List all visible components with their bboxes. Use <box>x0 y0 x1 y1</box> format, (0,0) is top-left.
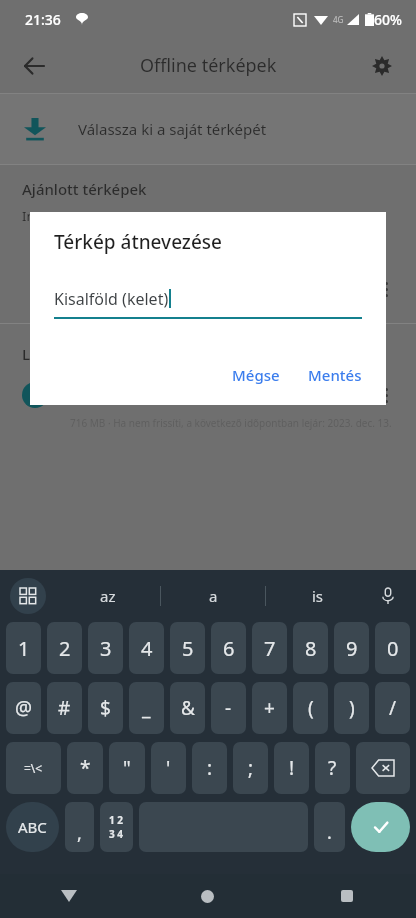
button[interactable]: az <box>56 570 160 622</box>
staticText: Térkép átnevezése <box>54 229 222 255</box>
staticText: * <box>80 755 91 781</box>
button[interactable]: Back <box>12 44 56 88</box>
button[interactable]: ( <box>293 682 328 734</box>
button[interactable]: 7 <box>252 622 287 674</box>
button[interactable]: Recents <box>277 874 416 918</box>
button[interactable]: ! <box>274 742 309 794</box>
staticText: Kisalföld (kelet) <box>54 288 169 310</box>
staticText: Mégse <box>232 365 280 385</box>
button[interactable]: 1 <box>6 622 41 674</box>
button[interactable]: Válassza ki a saját térképét <box>0 94 416 164</box>
staticText: 4 <box>141 635 153 662</box>
button[interactable]: , <box>65 802 94 852</box>
staticText: 9 <box>346 635 358 662</box>
button[interactable]: Numbers <box>100 802 133 852</box>
button[interactable]: Enter <box>351 802 410 852</box>
button[interactable]: a <box>161 570 265 622</box>
button[interactable]: & <box>170 682 205 734</box>
button[interactable]: $ <box>88 682 123 734</box>
button[interactable]: Mégse <box>224 357 288 393</box>
staticText: " <box>123 755 131 781</box>
staticText: / <box>389 695 397 721</box>
staticText: Válassza ki a saját térképét <box>78 119 267 139</box>
staticText: 21:36 <box>25 10 61 29</box>
button[interactable]: 5 <box>170 622 205 674</box>
staticText: 3 <box>100 635 112 662</box>
staticText: - <box>225 695 232 721</box>
button[interactable]: ? <box>315 742 350 794</box>
staticText: Le <box>22 344 39 364</box>
staticText: 4G <box>333 14 344 25</box>
button[interactable]: @ <box>6 682 41 734</box>
button[interactable]: 0 <box>375 622 410 674</box>
staticText: & <box>181 695 195 721</box>
staticText: is <box>312 586 324 606</box>
button[interactable]: More options <box>374 383 398 407</box>
staticText: 8 <box>305 635 317 662</box>
button[interactable]: 6 <box>211 622 246 674</box>
button[interactable]: / <box>375 682 410 734</box>
staticText: ( <box>308 695 314 721</box>
staticText: 1 <box>18 635 30 662</box>
staticText: ) <box>349 695 355 721</box>
button[interactable]: Settings <box>360 44 404 88</box>
staticText: ABC <box>18 817 47 837</box>
button[interactable]: : <box>192 742 227 794</box>
button[interactable]: 9 <box>334 622 369 674</box>
button[interactable]: * <box>67 742 103 794</box>
button[interactable]: - <box>211 682 246 734</box>
staticText: # <box>58 695 71 721</box>
staticText: 7 <box>264 635 276 662</box>
staticText: @ <box>15 695 33 721</box>
staticText: 0 <box>387 635 399 662</box>
staticText: In <box>22 207 35 225</box>
button[interactable]: ABC <box>6 802 59 852</box>
staticText: 716 MB · Ha nem frissíti, a következő id… <box>70 416 392 430</box>
staticText: . <box>327 820 332 845</box>
staticText: 3 4 <box>109 827 124 841</box>
button[interactable]: Toolbar <box>10 578 46 614</box>
button[interactable]: is <box>266 570 370 622</box>
staticText: ? <box>328 755 337 781</box>
button[interactable]: Back <box>0 874 138 918</box>
button[interactable]: Voice input <box>372 580 404 612</box>
staticText: 60% <box>374 10 402 29</box>
button[interactable]: Home <box>138 874 277 918</box>
button[interactable]: ' <box>151 742 186 794</box>
button[interactable]: Backspace <box>356 742 410 794</box>
button[interactable]: ) <box>334 682 369 734</box>
staticText: : <box>207 755 213 781</box>
button[interactable]: Mentés <box>300 357 370 393</box>
button[interactable]: 3 <box>88 622 123 674</box>
staticText: Ajánlott térképek <box>22 179 147 199</box>
staticText: ' <box>166 755 171 781</box>
button[interactable]: More options <box>374 277 398 301</box>
staticText: 6 <box>223 635 235 662</box>
button[interactable]: 4 <box>129 622 164 674</box>
staticText: Mentés <box>308 365 362 385</box>
staticText: 5 <box>182 635 194 662</box>
button[interactable]: =\< <box>6 742 61 794</box>
button[interactable]: + <box>252 682 287 734</box>
staticText: 2 <box>59 635 71 662</box>
button[interactable]: " <box>109 742 145 794</box>
staticText: =\< <box>24 760 43 776</box>
staticText: _ <box>142 695 151 721</box>
button[interactable]: 8 <box>293 622 328 674</box>
button[interactable]: 2 <box>47 622 82 674</box>
button[interactable]: _ <box>129 682 164 734</box>
staticText: 1 2 <box>109 813 124 827</box>
button[interactable]: # <box>47 682 82 734</box>
staticText: + <box>264 695 275 721</box>
staticText: $ <box>100 695 111 721</box>
button[interactable]: . <box>314 802 345 852</box>
staticText: ; <box>248 755 254 781</box>
staticText: , <box>77 821 82 846</box>
staticText: az <box>100 586 116 606</box>
staticText: a <box>209 586 218 606</box>
staticText: ! <box>289 755 295 781</box>
button[interactable]: ; <box>233 742 268 794</box>
staticText: Offline térképek <box>140 53 277 78</box>
